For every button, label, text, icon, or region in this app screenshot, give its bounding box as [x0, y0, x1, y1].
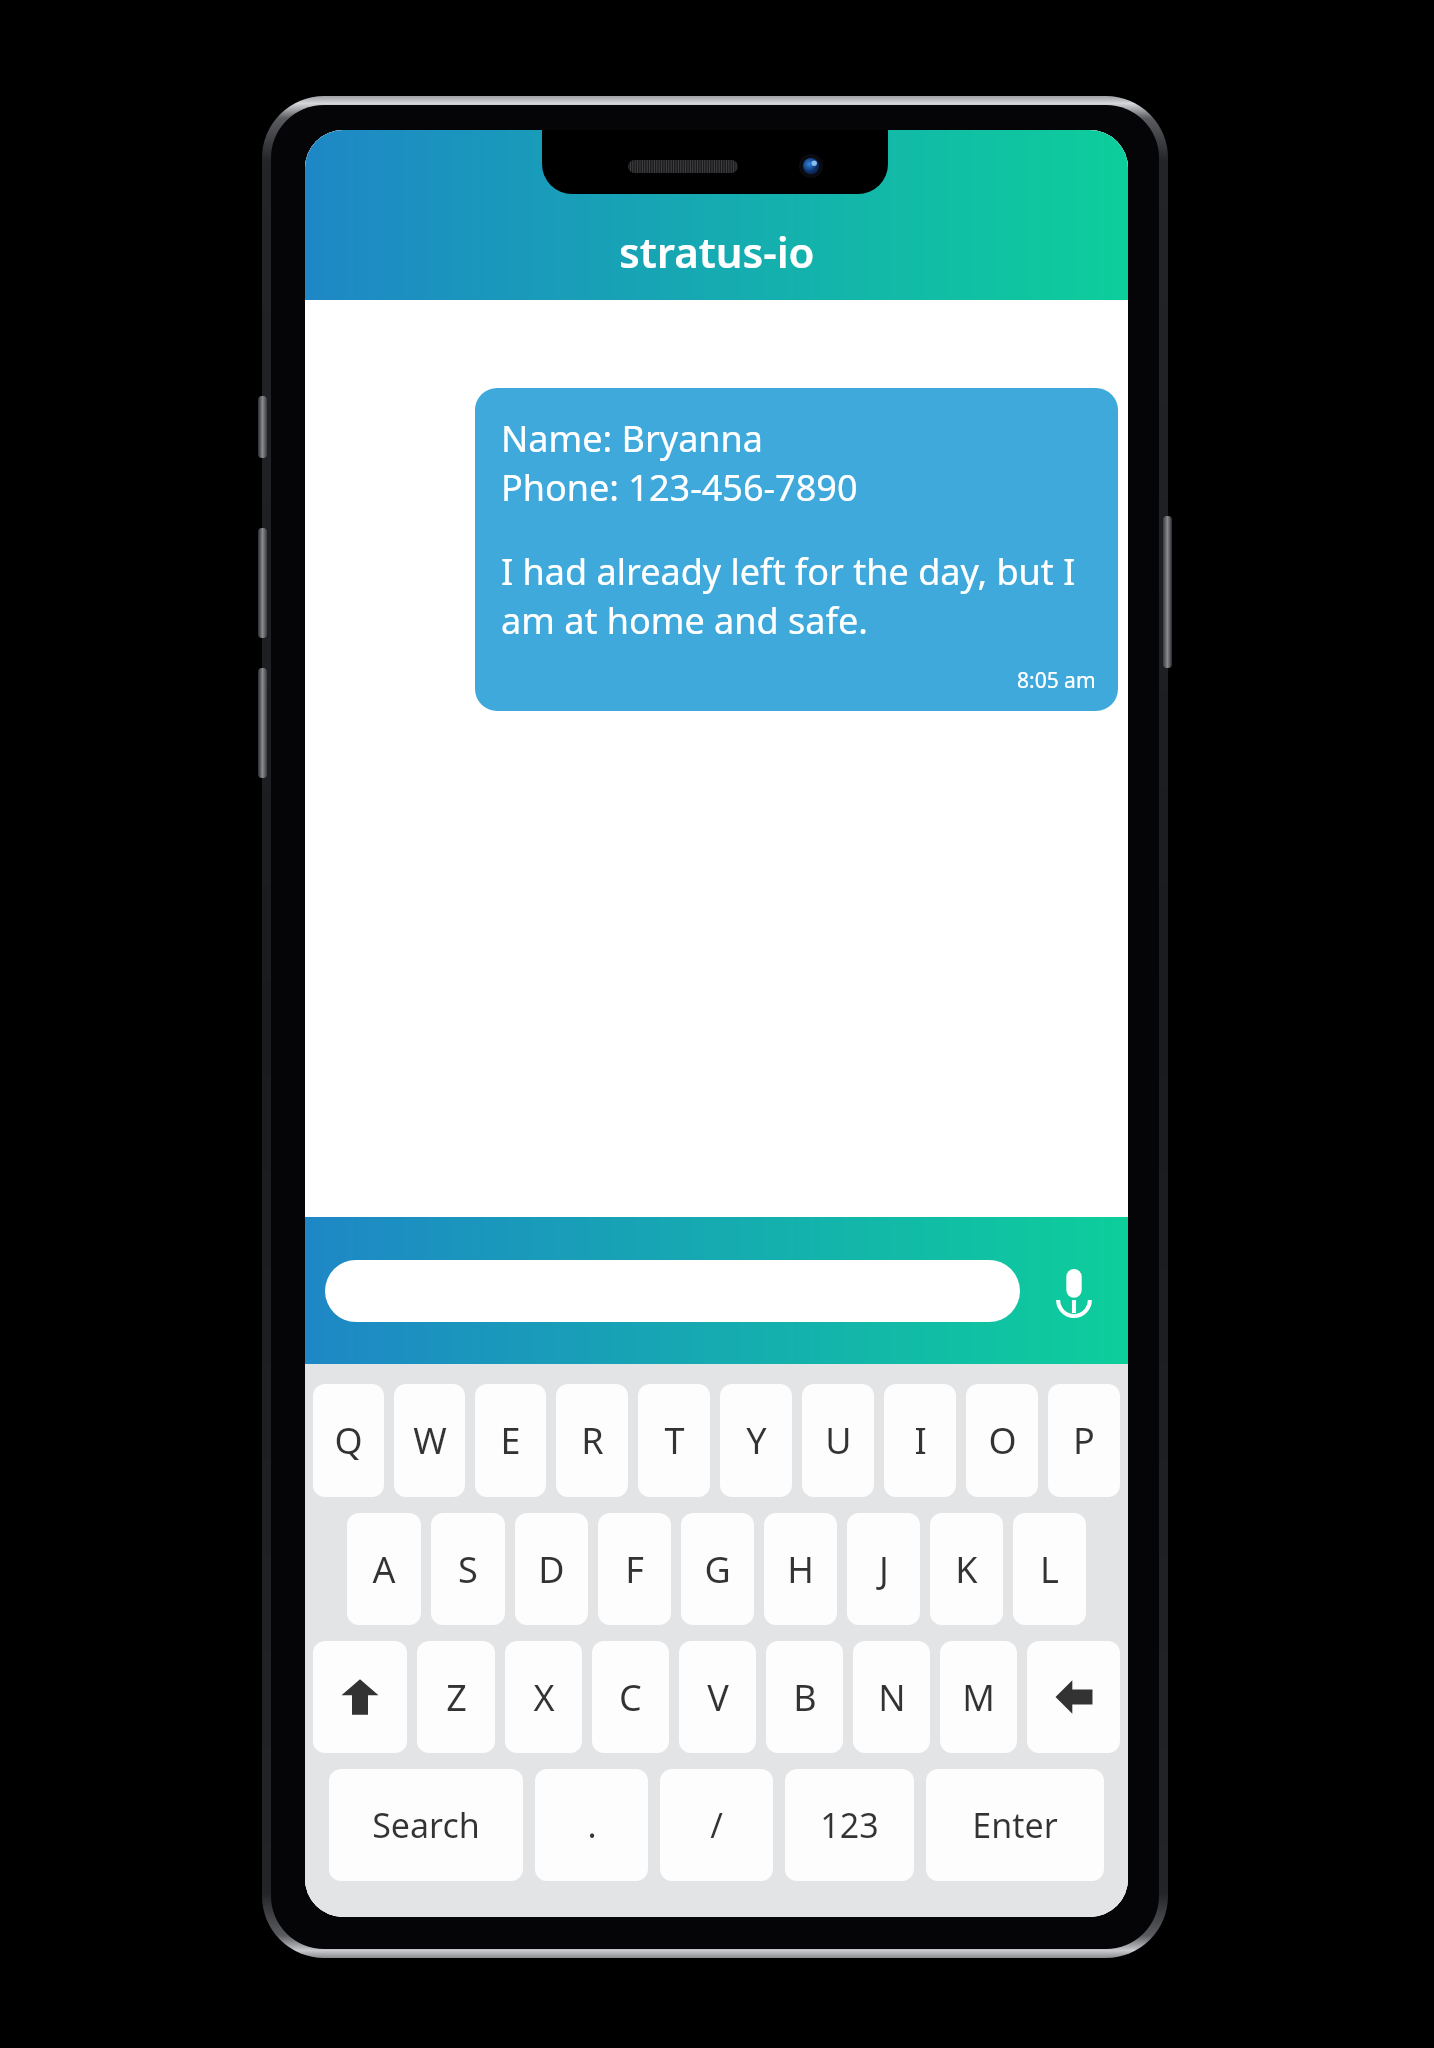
staticText: P	[1073, 1416, 1095, 1465]
staticText: F	[625, 1545, 644, 1594]
staticText: M	[962, 1673, 995, 1722]
button[interactable]: K	[930, 1513, 1003, 1625]
staticText: V	[707, 1673, 729, 1722]
staticText: 8:05 am	[1017, 666, 1096, 695]
staticText: Q	[334, 1416, 363, 1465]
button[interactable]: O	[966, 1384, 1038, 1497]
button[interactable]: 123	[785, 1769, 914, 1881]
button[interactable]: L	[1013, 1513, 1086, 1625]
button[interactable]: Voice input	[1040, 1257, 1108, 1325]
staticText: X	[533, 1673, 555, 1722]
staticText: .	[587, 1802, 597, 1848]
staticText: stratus-io	[619, 223, 815, 280]
staticText: A	[372, 1545, 396, 1594]
button[interactable]: E	[475, 1384, 546, 1497]
button[interactable]: S	[431, 1513, 505, 1625]
staticText: D	[538, 1545, 565, 1594]
staticText: K	[955, 1545, 978, 1594]
staticText: Enter	[972, 1802, 1058, 1848]
staticText: O	[988, 1416, 1017, 1465]
staticText: I had already left for the day, but I am…	[501, 547, 1096, 644]
button[interactable]: .	[535, 1769, 648, 1881]
button[interactable]: T	[638, 1384, 710, 1497]
button[interactable]: I	[884, 1384, 956, 1497]
button[interactable]: A	[347, 1513, 421, 1625]
staticText: /	[710, 1802, 723, 1848]
button[interactable]: Q	[313, 1384, 384, 1497]
staticText: C	[619, 1673, 642, 1722]
staticText: L	[1040, 1545, 1059, 1594]
staticText: 123	[820, 1802, 879, 1848]
button[interactable]: D	[515, 1513, 588, 1625]
staticText: J	[879, 1545, 889, 1594]
staticText: R	[581, 1416, 604, 1465]
button[interactable]: J	[847, 1513, 920, 1625]
staticText: N	[878, 1673, 906, 1722]
button[interactable]: F	[598, 1513, 671, 1625]
button[interactable]: H	[764, 1513, 837, 1625]
staticText: S	[458, 1545, 478, 1594]
staticText: B	[793, 1673, 817, 1722]
button[interactable]: V	[679, 1641, 756, 1753]
button[interactable]: U	[802, 1384, 874, 1497]
button[interactable]: Search	[329, 1769, 523, 1881]
staticText: Z	[446, 1673, 467, 1722]
button[interactable]: Y	[720, 1384, 792, 1497]
button[interactable]: C	[592, 1641, 669, 1753]
staticText: E	[500, 1416, 521, 1465]
button[interactable]: Name: Bryanna Phone: 123-456-7890	[475, 388, 1118, 711]
button[interactable]: X	[505, 1641, 582, 1753]
button[interactable]	[325, 1260, 1020, 1322]
staticText: I	[914, 1416, 927, 1465]
button[interactable]: Enter	[926, 1769, 1104, 1881]
staticText: Search	[372, 1802, 480, 1848]
button[interactable]: Shift	[313, 1641, 407, 1753]
button[interactable]: Backspace	[1027, 1641, 1120, 1753]
staticText: Y	[746, 1416, 767, 1465]
staticText: U	[825, 1416, 852, 1465]
button[interactable]: N	[853, 1641, 930, 1753]
button[interactable]: G	[681, 1513, 754, 1625]
staticText: T	[664, 1416, 685, 1465]
staticText: G	[704, 1545, 731, 1594]
button[interactable]: /	[660, 1769, 773, 1881]
button[interactable]: P	[1048, 1384, 1120, 1497]
button[interactable]: Z	[417, 1641, 495, 1753]
button[interactable]: B	[766, 1641, 843, 1753]
staticText: W	[413, 1416, 447, 1465]
button[interactable]: W	[394, 1384, 465, 1497]
button[interactable]: R	[556, 1384, 628, 1497]
staticText: Name: Bryanna Phone: 123-456-7890	[501, 414, 858, 511]
staticText: H	[787, 1545, 814, 1594]
button[interactable]: M	[940, 1641, 1017, 1753]
